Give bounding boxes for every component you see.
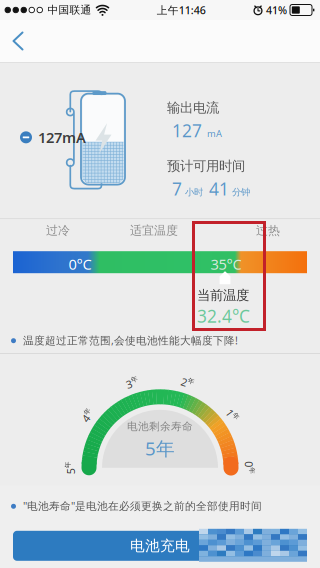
staticText: 127mA <box>38 128 86 147</box>
staticText: 35°C <box>210 254 241 274</box>
staticText: 年 <box>132 376 139 384</box>
staticText: 输出电流 <box>167 100 219 116</box>
staticText: 适宜温度 <box>130 223 178 238</box>
staticText: 温度超过正常范围,会使电池性能大幅度下降! <box>23 333 238 347</box>
staticText: 小时 <box>185 186 203 198</box>
staticText: 4 <box>81 408 87 423</box>
staticText: 0°C <box>68 254 91 274</box>
staticText: "电池寿命"是电池在必须更换之前的全部使用时间 <box>23 499 262 513</box>
staticText: 0 <box>242 461 248 475</box>
staticText: 1 <box>225 408 231 423</box>
staticText: 分钟 <box>232 186 250 198</box>
staticText: 5年 <box>145 436 175 461</box>
staticText: 当前温度 <box>197 287 249 304</box>
staticText: 3 <box>126 376 132 390</box>
staticText: 5 <box>64 461 70 475</box>
staticText: 中国联通 <box>47 3 91 16</box>
staticText: 过冷 <box>46 223 70 238</box>
staticText: 32.4°C <box>197 305 250 328</box>
staticText: 7 <box>172 177 182 200</box>
staticText: 年 <box>248 461 255 469</box>
staticText: 电池充电 <box>130 537 190 555</box>
staticText: 年 <box>87 408 94 417</box>
staticText: 2 <box>181 376 187 390</box>
staticText: 41 <box>209 177 229 200</box>
staticText: 41% <box>266 3 287 17</box>
staticText: 年 <box>187 376 194 384</box>
staticText: 电池剩余寿命 <box>127 420 193 433</box>
button[interactable]: Back <box>0 20 45 62</box>
staticText: 过热 <box>256 223 280 238</box>
staticText: 127 <box>172 119 202 142</box>
staticText: 年 <box>231 408 238 417</box>
button[interactable]: 电池充电 <box>13 531 307 561</box>
staticText: 预计可用时间 <box>167 158 245 174</box>
staticText: mA <box>207 127 222 139</box>
staticText: 年 <box>70 461 77 469</box>
staticText: 上午11:46 <box>157 3 206 17</box>
